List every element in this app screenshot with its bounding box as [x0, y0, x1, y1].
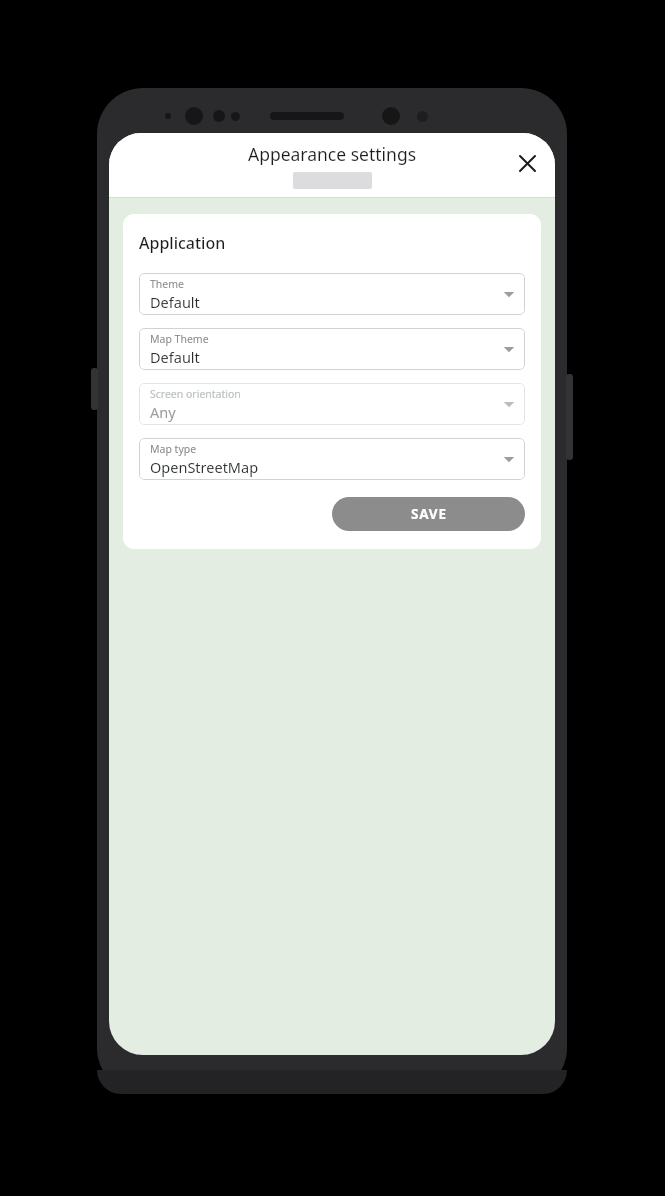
staticText: Application	[139, 232, 226, 254]
staticText: Any	[150, 402, 176, 422]
staticText: SAVE	[411, 505, 447, 523]
button[interactable]: Map type	[139, 438, 525, 480]
button[interactable]: Map Theme	[139, 328, 525, 370]
button[interactable]: Theme	[139, 273, 525, 315]
staticText: Screen orientation	[150, 387, 241, 401]
staticText: Theme	[150, 277, 184, 291]
button[interactable]: Close	[507, 143, 547, 183]
staticText: Map Theme	[150, 332, 209, 346]
staticText: Appearance settings	[109, 142, 555, 166]
staticText: Default	[150, 347, 200, 367]
button[interactable]: SAVE	[332, 497, 525, 531]
staticText: Map type	[150, 442, 197, 456]
staticText: Default	[150, 292, 200, 312]
staticText: OpenStreetMap	[150, 457, 259, 477]
button[interactable]: Screen orientation	[139, 383, 525, 425]
